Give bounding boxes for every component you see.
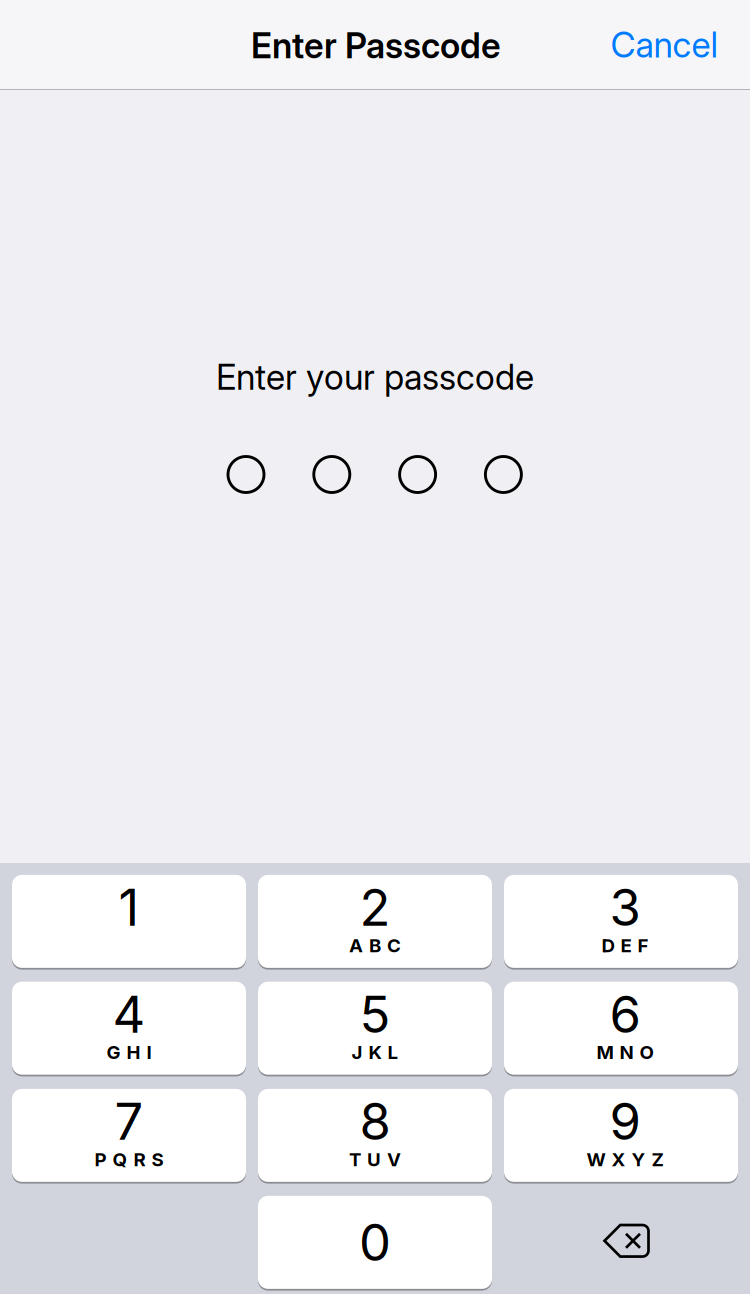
staticText: 5: [359, 983, 390, 1045]
staticText: 3: [609, 877, 640, 938]
staticText: Enter Passcode: [251, 25, 501, 66]
staticText: 2: [359, 877, 390, 938]
staticText: 7: [114, 1091, 143, 1152]
staticText: TUV: [349, 1148, 401, 1171]
button[interactable]: 3: [504, 875, 738, 968]
staticText: 9: [609, 1091, 640, 1152]
button[interactable]: Cancel: [589, 8, 739, 82]
staticText: 1: [118, 877, 139, 938]
staticText: ABC: [349, 934, 401, 957]
button[interactable]: 6: [504, 982, 738, 1075]
staticText: PQRS: [94, 1148, 163, 1171]
staticText: Enter your passcode: [216, 356, 534, 398]
staticText: 8: [359, 1091, 390, 1152]
staticText: JKL: [351, 1041, 398, 1063]
button[interactable]: 2: [258, 875, 492, 968]
button[interactable]: 7: [12, 1089, 246, 1182]
staticText: Cancel: [610, 24, 718, 66]
button[interactable]: 8: [258, 1089, 492, 1182]
staticText: MNO: [596, 1041, 653, 1063]
staticText: WXYZ: [586, 1148, 663, 1171]
button[interactable]: 9: [504, 1089, 738, 1182]
staticText: 4: [112, 983, 145, 1045]
button[interactable]: 1: [12, 875, 246, 968]
staticText: 0: [359, 1212, 391, 1273]
button[interactable]: 5: [258, 982, 492, 1075]
staticText: DEF: [601, 934, 648, 957]
staticText: 6: [609, 983, 640, 1045]
button[interactable]: Delete: [509, 1194, 743, 1287]
button[interactable]: 4: [12, 982, 246, 1075]
button[interactable]: 0: [258, 1196, 492, 1289]
staticText: GHI: [106, 1041, 151, 1063]
